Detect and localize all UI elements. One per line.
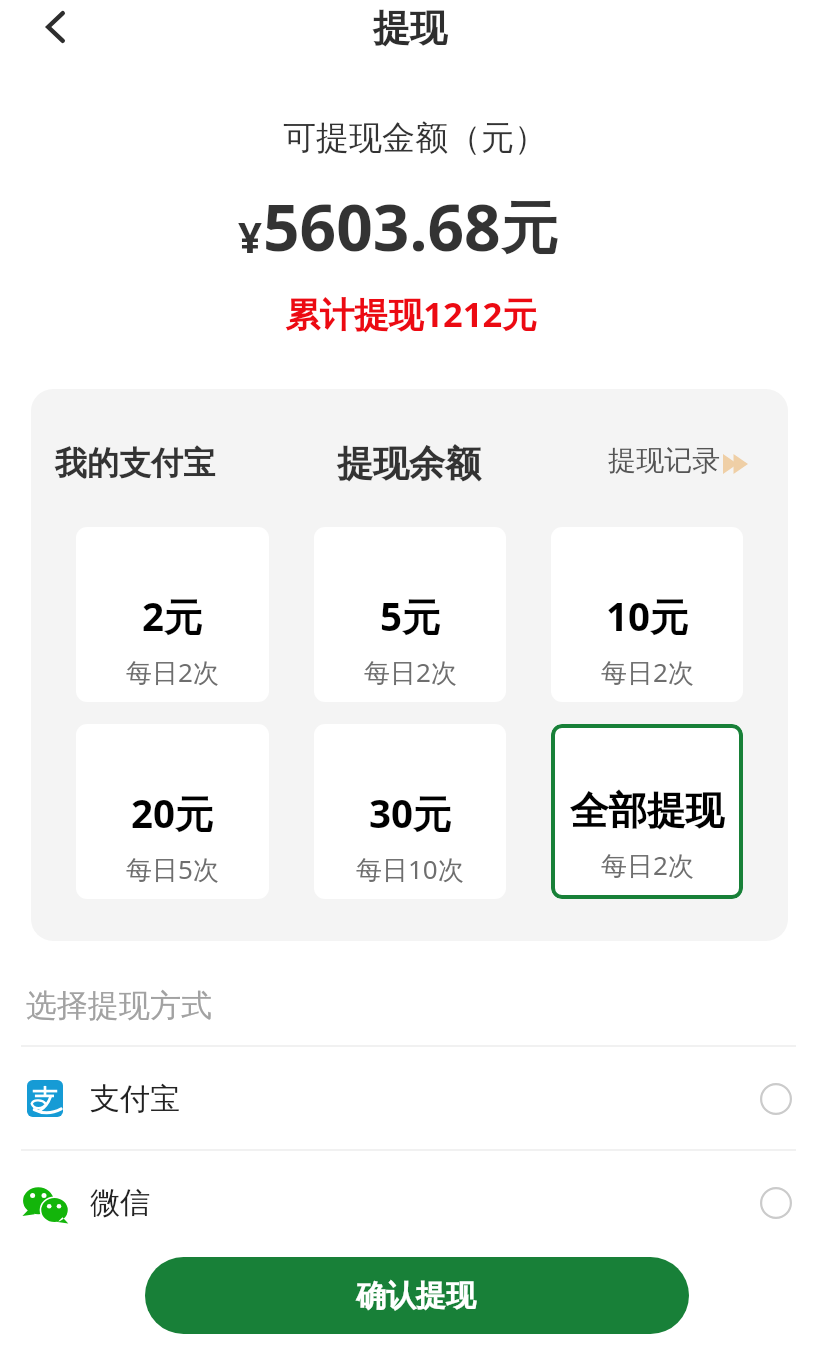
staticText: 累计提现1212元 xyxy=(1,290,820,337)
button[interactable]: 2元 xyxy=(76,527,269,702)
button[interactable]: 5元 xyxy=(314,527,506,702)
button[interactable]: 30元 xyxy=(314,724,506,899)
staticText: 每日10次 xyxy=(356,851,464,887)
staticText: 20元 xyxy=(131,787,214,840)
staticText: 选择提现方式 xyxy=(26,986,212,1025)
staticText: 每日2次 xyxy=(601,654,694,690)
button[interactable]: 20元 xyxy=(76,724,269,899)
staticText: 确认提现 xyxy=(356,1277,476,1315)
staticText: 支付宝 xyxy=(90,1080,180,1118)
staticText: 2元 xyxy=(142,590,203,643)
button[interactable]: 全部提现 xyxy=(551,724,743,899)
button[interactable]: 微信 xyxy=(0,1151,820,1254)
staticText: 5元 xyxy=(380,590,441,643)
button[interactable]: Back xyxy=(24,0,86,58)
staticText: 可提现金额（元） xyxy=(5,117,820,159)
staticText: 微信 xyxy=(90,1184,150,1222)
staticText: 30元 xyxy=(369,787,452,840)
staticText: 每日2次 xyxy=(126,654,219,690)
staticText: 每日2次 xyxy=(364,654,457,690)
button[interactable]: 10元 xyxy=(551,527,743,702)
staticText: 每日5次 xyxy=(126,851,219,887)
staticText: 提现记录 xyxy=(608,443,720,478)
staticText: ¥ xyxy=(238,208,263,265)
button[interactable]: 确认提现 xyxy=(145,1257,689,1334)
staticText: 全部提现 xyxy=(570,787,724,836)
staticText: 元 xyxy=(501,193,558,265)
staticText: 提现 xyxy=(0,5,820,52)
staticText: 每日2次 xyxy=(601,847,694,883)
staticText: 提现余额 xyxy=(337,441,481,486)
staticText: 10元 xyxy=(606,590,689,643)
staticText: 5603.68 xyxy=(263,183,501,270)
button[interactable]: 支付宝 xyxy=(0,1047,820,1150)
button[interactable]: 提现记录 xyxy=(608,443,748,478)
staticText: 我的支付宝 xyxy=(55,443,215,483)
